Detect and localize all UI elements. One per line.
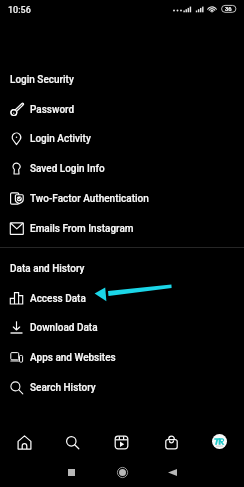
button[interactable]: Profile — [202, 424, 236, 458]
button[interactable]: Saved Login Info — [0, 154, 244, 183]
button[interactable]: Home — [7, 425, 41, 459]
button[interactable]: Two-Factor Authentication — [0, 184, 244, 213]
button[interactable]: Apps and Websites — [0, 343, 244, 372]
staticText: Two-Factor Authentication — [30, 193, 149, 205]
staticText: Search History — [30, 382, 96, 394]
button[interactable]: Login Activity — [0, 124, 244, 153]
staticText: Login Security — [10, 74, 74, 86]
button[interactable]: Recents — [55, 459, 87, 485]
button[interactable]: Shop — [154, 425, 188, 459]
staticText: Data and History — [10, 263, 85, 275]
staticText: Password — [30, 104, 75, 116]
button[interactable]: Download Data — [0, 313, 244, 342]
staticText: Emails From Instagram — [30, 223, 134, 235]
staticText: 10:56 — [8, 5, 31, 16]
button[interactable]: Back — [156, 459, 188, 485]
staticText: Access Data — [30, 293, 86, 305]
staticText: Apps and Websites — [30, 352, 116, 364]
button[interactable]: Home — [106, 459, 138, 485]
staticText: Login Activity — [30, 133, 91, 145]
staticText: Saved Login Info — [30, 163, 105, 175]
staticText: 36 — [225, 6, 232, 13]
button[interactable]: Search History — [0, 373, 244, 402]
button[interactable]: Search — [55, 425, 89, 459]
button[interactable]: Emails From Instagram — [0, 214, 244, 243]
button[interactable]: Access Data — [0, 284, 244, 313]
button[interactable]: Password — [0, 95, 244, 124]
staticText: Download Data — [30, 322, 98, 334]
button[interactable]: Reels — [104, 425, 138, 459]
